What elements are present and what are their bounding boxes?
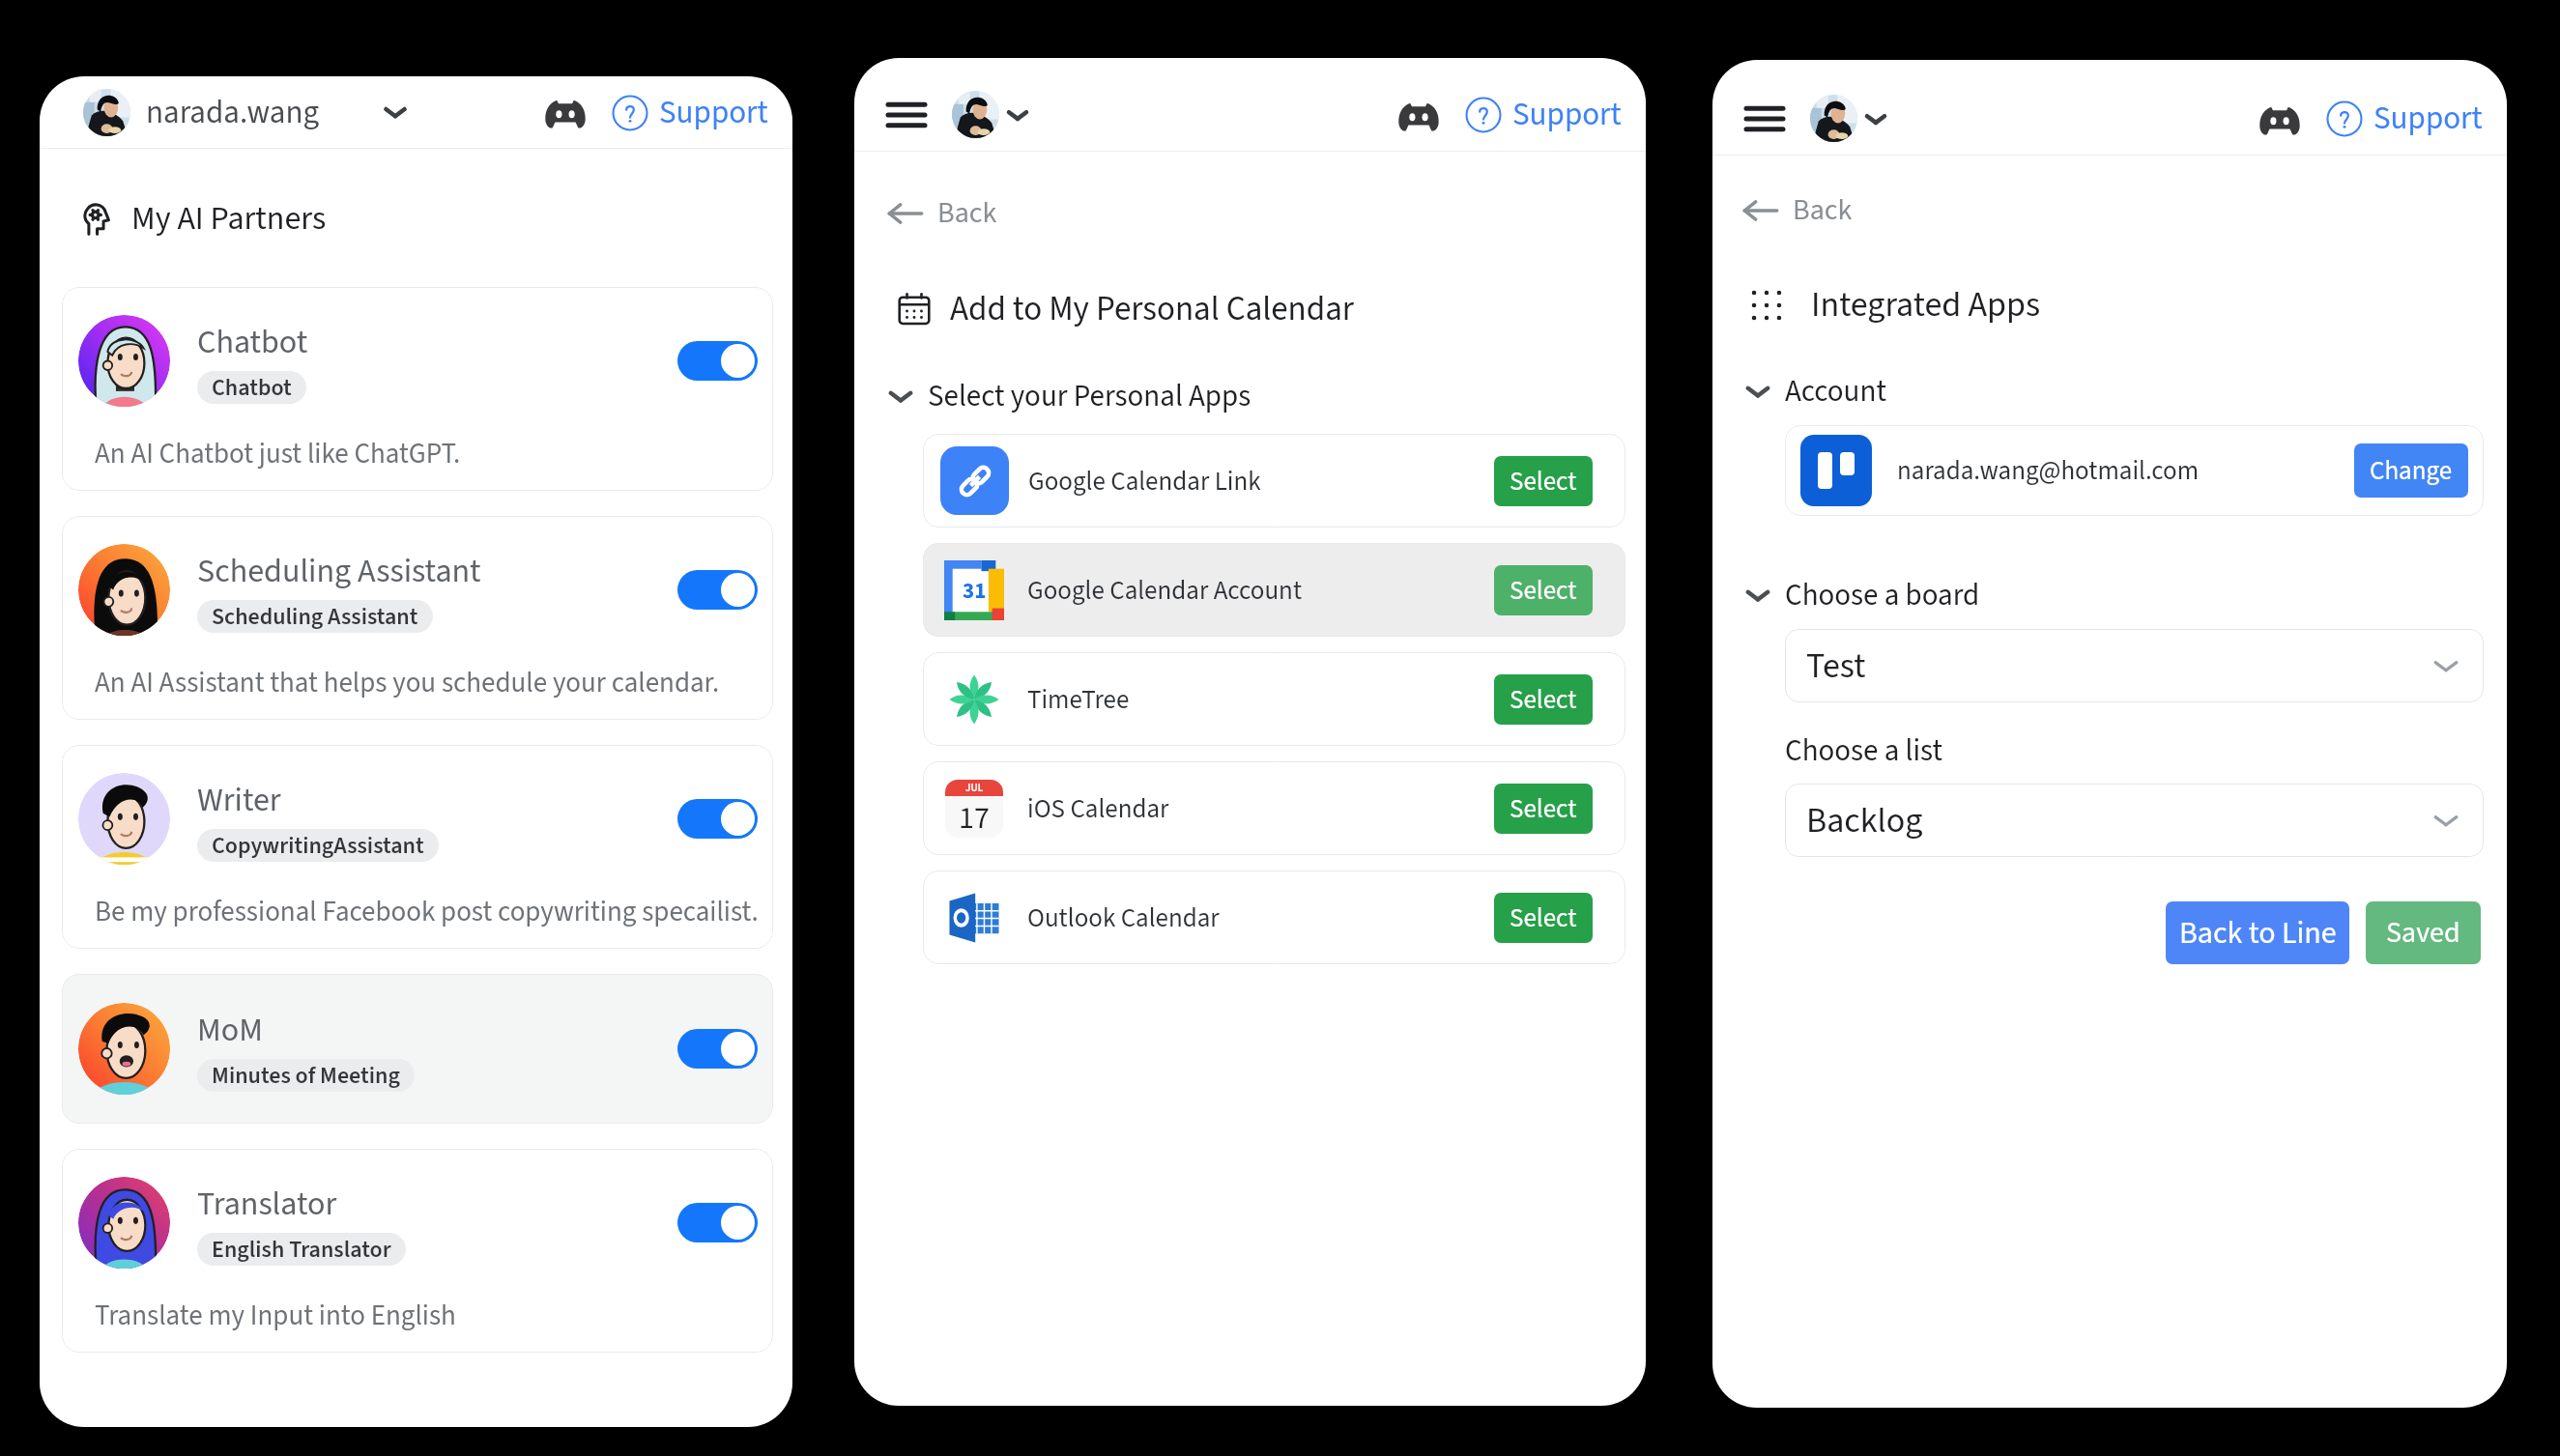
button[interactable]: Toggle Scheduling Assistant [677,570,758,610]
button[interactable]: Toggle Writer [677,799,758,839]
staticText: Choose a list [1785,729,1942,772]
staticText: Translator [197,1181,337,1227]
staticText: Support [659,90,768,135]
button[interactable]: TimeTree [923,652,1625,746]
button[interactable]: Menu [888,100,925,129]
staticText: JUL [965,781,984,796]
staticText: Google Calendar Account [1027,572,1303,609]
button[interactable]: Select [1494,893,1593,943]
button[interactable]: Scheduling Assistant [62,516,773,720]
staticText: Change [2370,452,2453,489]
staticText: Select [1510,790,1577,827]
staticText: Select [1510,463,1577,500]
staticText: Chatbot [212,371,292,404]
button[interactable]: Saved [2366,901,2481,964]
button[interactable]: Select [1494,674,1593,725]
staticText: Translate my Input into English [95,1296,456,1335]
button[interactable]: Back [887,192,997,234]
staticText: Scheduling Assistant [212,600,418,633]
staticText: Back [937,192,997,234]
staticText: CopywritingAssistant [212,829,424,862]
button[interactable]: Writer [62,745,773,949]
staticText: Support [2373,96,2483,141]
staticText: 17 [959,796,990,838]
button[interactable]: Back to Line [2166,901,2349,964]
staticText: narada.wang [146,90,320,135]
staticText: Support [1512,92,1622,137]
button[interactable]: Select [1494,565,1593,615]
staticText: Account [1785,370,1886,413]
staticText: narada.wang@hotmail.com [1897,452,2200,489]
staticText: 31 [963,575,987,607]
button[interactable]: MoM [62,974,773,1124]
button[interactable]: Outlook Calendar [923,871,1625,964]
button[interactable]: 31 [923,543,1625,637]
button[interactable]: narada.wang@hotmail.com [1785,425,2484,516]
staticText: Back [1793,189,1853,231]
staticText: Select [1510,572,1577,609]
staticText: An AI Assistant that helps you schedule … [95,663,720,702]
button[interactable]: Test [1785,629,2484,702]
button[interactable]: Toggle MoM [677,1029,758,1069]
staticText: Choose a board [1785,574,1980,616]
button[interactable]: Support [1465,92,1622,137]
staticText: Select [1510,899,1577,936]
staticText: Select [1510,681,1577,718]
button[interactable]: Google Calendar Link [923,434,1625,528]
staticText: Scheduling Assistant [197,548,481,594]
button[interactable]: Menu [1746,104,1783,133]
staticText: Writer [197,777,281,823]
staticText: Be my professional Facebook post copywri… [95,892,758,931]
button[interactable]: Translator [62,1149,773,1353]
staticText: Minutes of Meeting [212,1059,400,1092]
button[interactable]: Select [1494,784,1593,834]
staticText: TimeTree [1027,681,1130,718]
button[interactable]: Back [1742,189,1853,231]
staticText: English Translator [212,1233,391,1266]
staticText: Integrated Apps [1811,280,2040,329]
button[interactable]: Support [612,90,768,135]
button[interactable]: Chatbot [62,287,773,491]
staticText: An AI Chatbot just like ChatGPT. [95,434,461,473]
staticText: Google Calendar Link [1028,463,1261,500]
staticText: iOS Calendar [1027,790,1169,827]
button[interactable]: Support [2326,96,2483,141]
button[interactable]: Toggle Translator [677,1203,758,1242]
staticText: Test [1806,642,1866,691]
staticText: MoM [197,1007,263,1053]
staticText: Back to Line [2179,911,2337,956]
button[interactable]: Toggle Chatbot [677,341,758,381]
staticText: Chatbot [197,319,308,365]
staticText: Add to My Personal Calendar [950,285,1354,333]
button[interactable]: Backlog [1785,784,2484,857]
button[interactable]: Select [1494,456,1593,506]
staticText: Select your Personal Apps [928,375,1251,417]
button[interactable]: JUL [923,761,1625,855]
staticText: My AI Partners [131,195,327,242]
staticText: Saved [2386,912,2460,954]
button[interactable]: Change [2354,443,2468,498]
staticText: Outlook Calendar [1027,899,1220,936]
staticText: Backlog [1806,796,1923,845]
